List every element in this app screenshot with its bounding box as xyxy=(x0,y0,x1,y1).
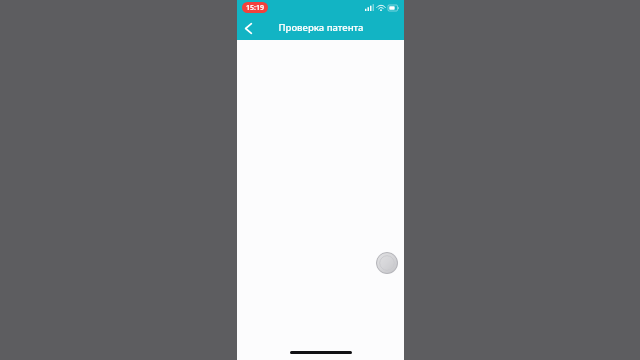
staticText: 15:19 xyxy=(246,3,264,13)
button[interactable]: Assistive touch xyxy=(376,252,398,274)
staticText: Проверка патента xyxy=(278,21,364,34)
button[interactable]: Back xyxy=(237,17,259,39)
